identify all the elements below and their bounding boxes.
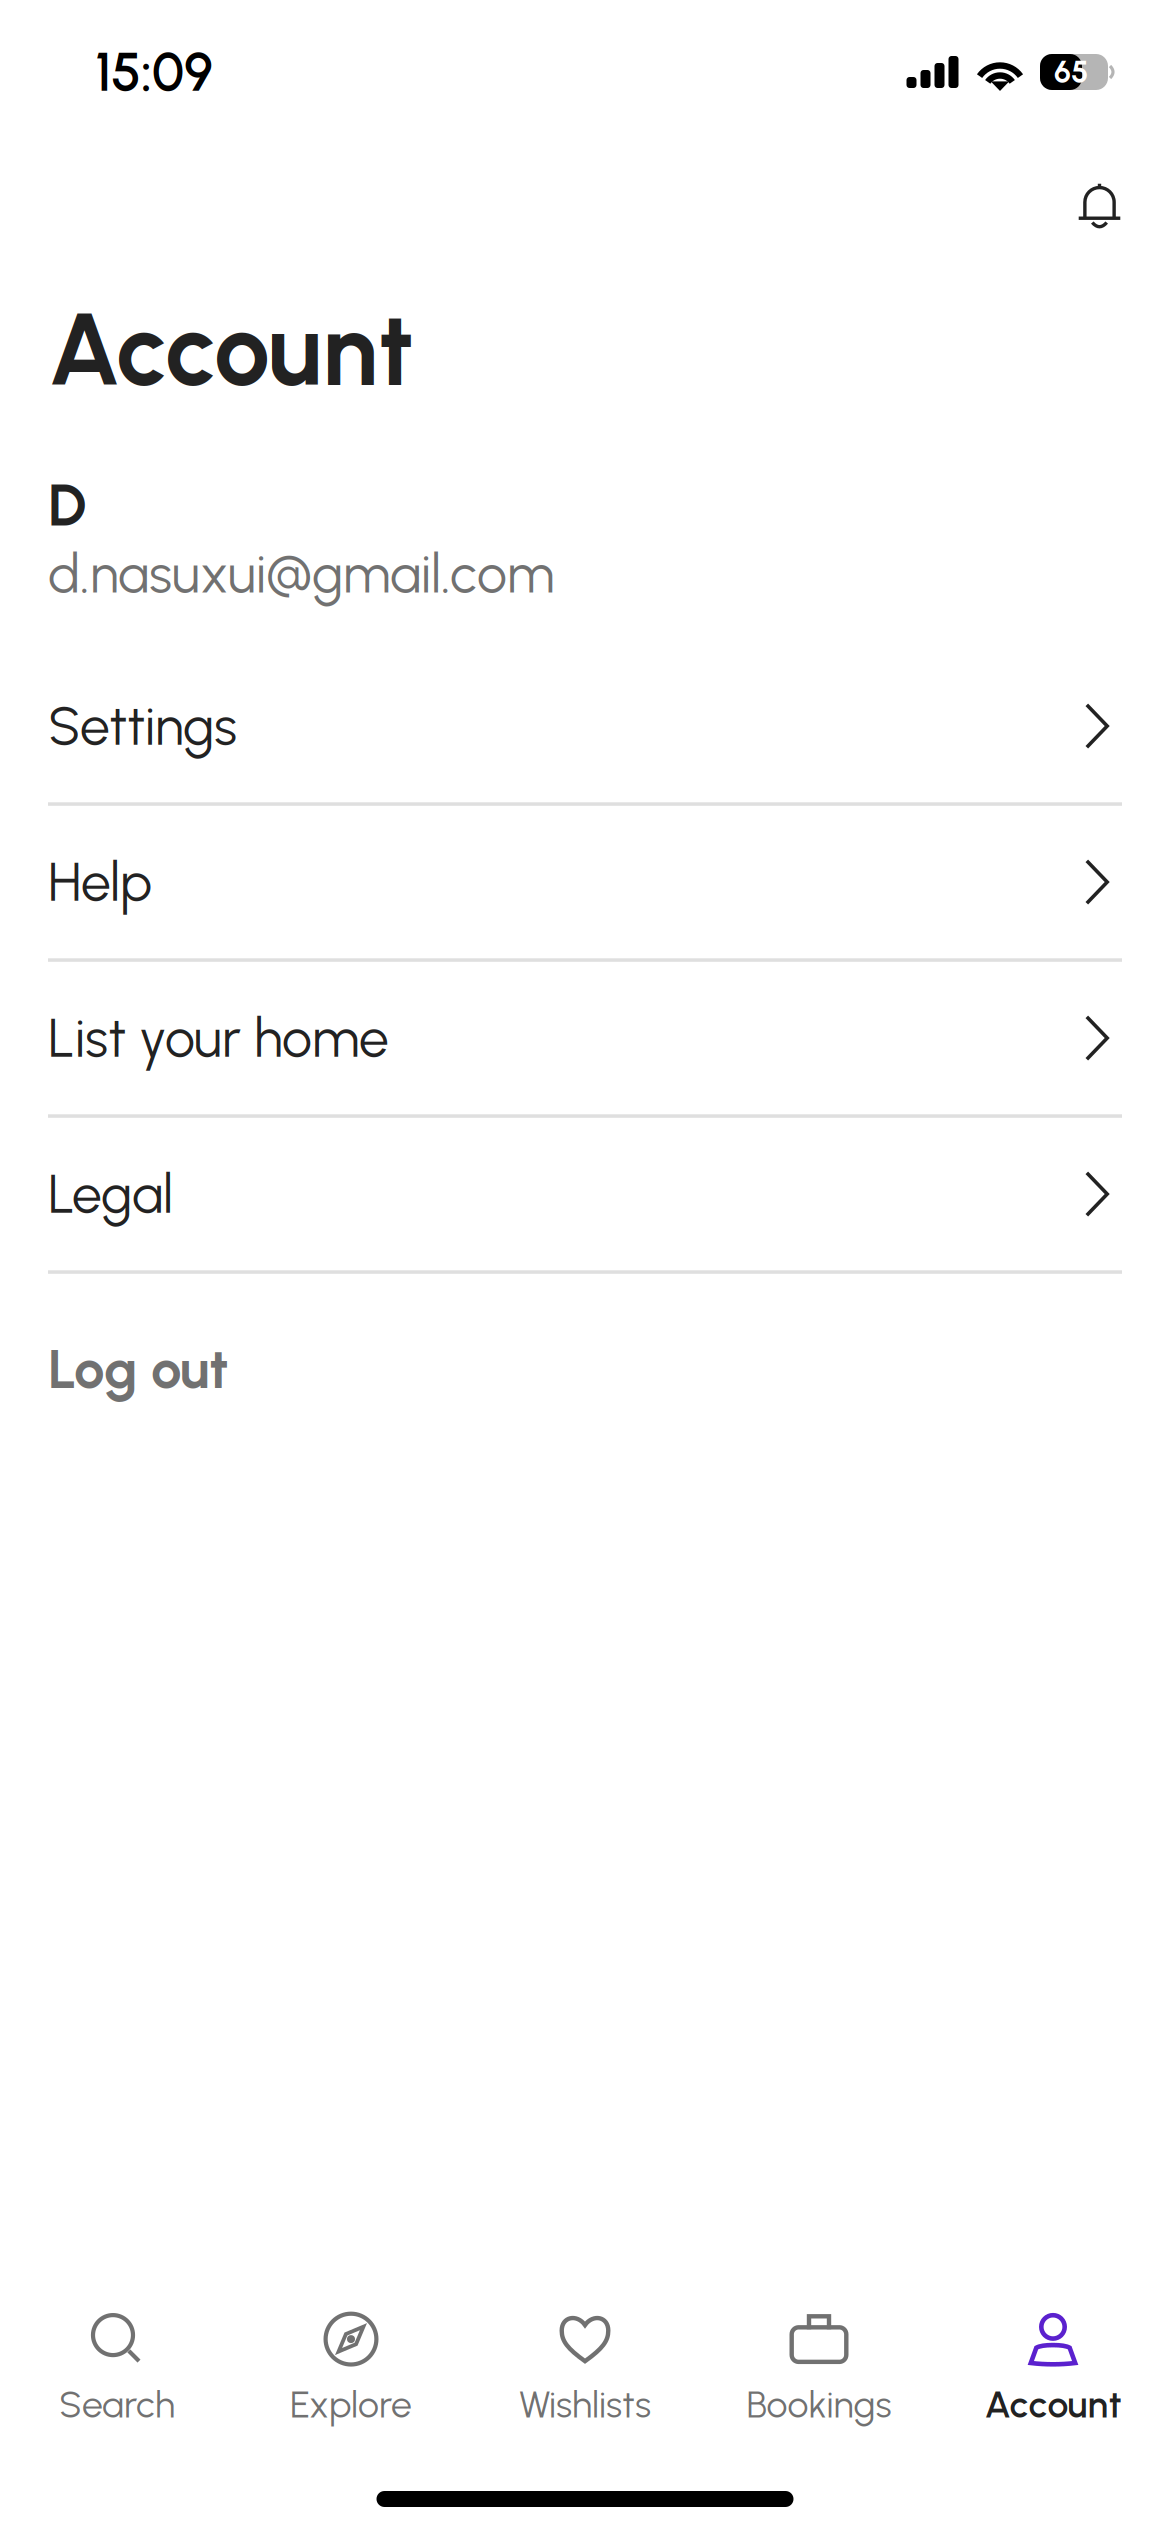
staticText: Search [59,2382,175,2427]
staticText: 15:09 [95,40,213,104]
button[interactable]: Help [0,806,1170,958]
staticText: Bookings [746,2382,891,2427]
staticText: Account [48,290,414,410]
button[interactable]: Explore [234,2309,468,2427]
staticText: List your home [48,1006,389,1070]
staticText: Account [984,2382,1121,2427]
button[interactable]: Settings [0,650,1170,802]
staticText: Wishlists [519,2382,651,2427]
staticText: Explore [290,2382,412,2427]
staticText: D [48,471,87,540]
button[interactable]: List your home [0,962,1170,1114]
staticText: Help [48,850,152,914]
staticText: Log out [48,1336,229,1402]
button[interactable]: Notifications [1055,160,1144,252]
button[interactable]: Log out [0,1274,1170,1464]
button[interactable]: Legal [0,1118,1170,1270]
button[interactable]: Bookings [702,2309,936,2427]
staticText: d.nasuxui@gmail.com [48,542,554,606]
staticText: Legal [48,1162,173,1226]
button[interactable]: Search [0,2309,234,2427]
button[interactable]: Account [936,2309,1170,2427]
staticText: Settings [48,694,237,758]
staticText: 65 [1054,54,1089,90]
button[interactable]: Wishlists [468,2309,702,2427]
